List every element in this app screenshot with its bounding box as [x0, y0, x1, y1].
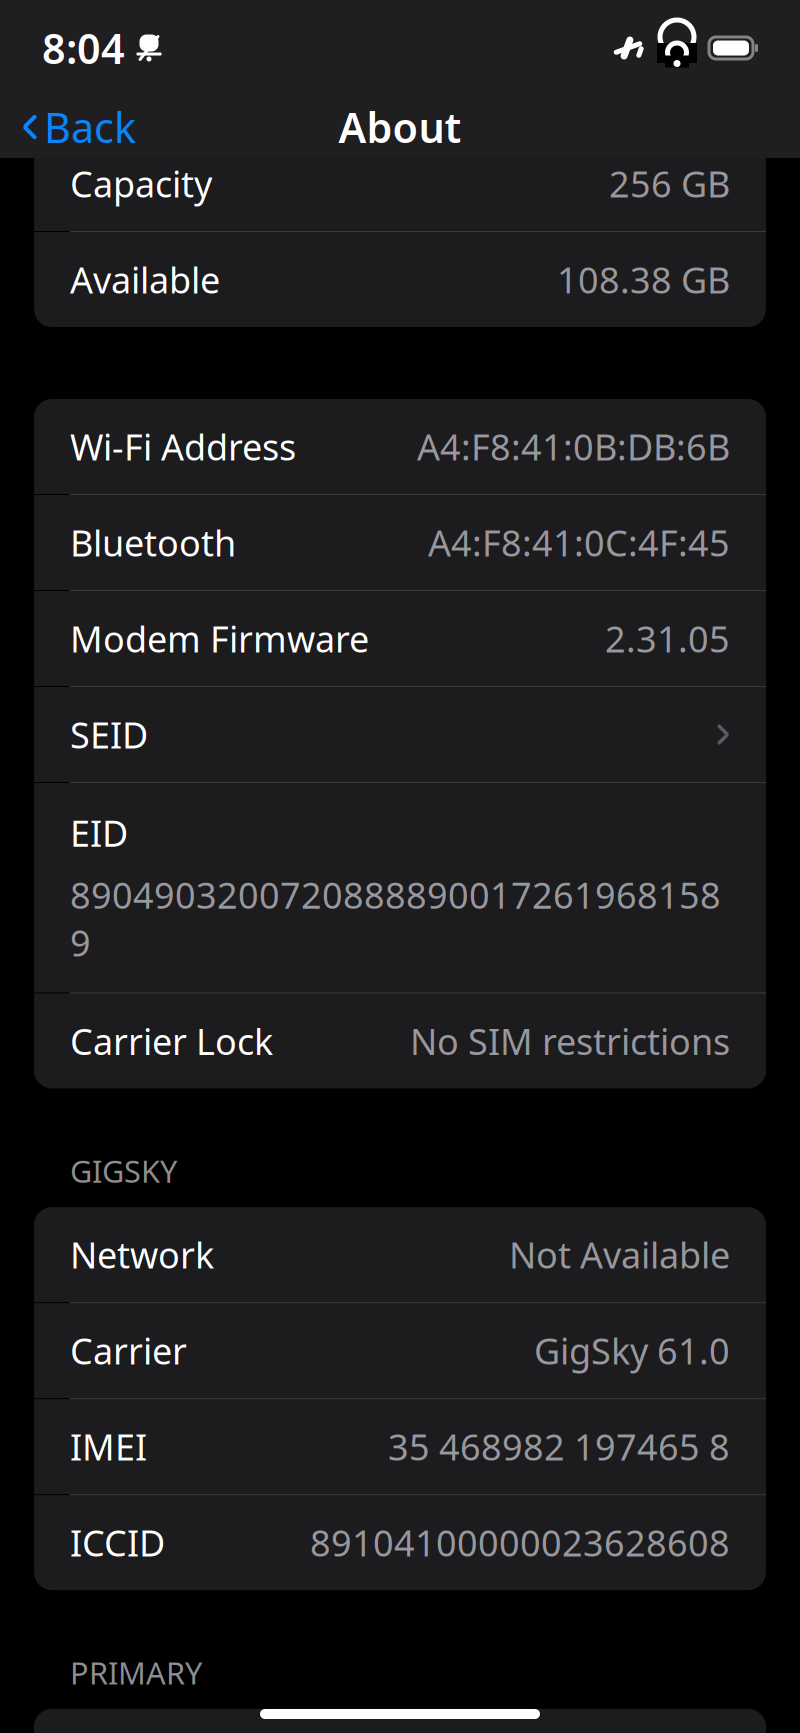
staticText: PRIMARY	[70, 1652, 202, 1693]
button[interactable]: SEID	[34, 687, 766, 782]
staticText: Back	[44, 100, 136, 154]
staticText: ICCID	[70, 1519, 165, 1566]
staticText: A4:F8:41:0C:4F:45	[428, 519, 730, 566]
staticText: 256 GB	[609, 160, 730, 207]
staticText: GigSky 61.0	[534, 1327, 730, 1374]
staticText: GIGSKY	[70, 1150, 177, 1191]
staticText: 8:04	[42, 21, 125, 75]
staticText: Network	[70, 1231, 214, 1278]
staticText: Modem Firmware	[70, 615, 369, 662]
staticText: 108.38 GB	[557, 256, 730, 303]
staticText: Available	[70, 256, 220, 303]
staticText: About	[338, 100, 461, 154]
staticText: SEID	[70, 711, 148, 758]
staticText: 35 468982 197465 8	[388, 1423, 730, 1470]
staticText: No SIM restrictions	[410, 1017, 730, 1065]
staticText: IMEI	[70, 1423, 147, 1470]
staticText: Bluetooth	[70, 519, 236, 566]
button[interactable]: Back	[0, 90, 158, 164]
staticText: 89049032007208888900172619681589	[70, 871, 721, 966]
staticText: Wi-Fi Address	[70, 423, 296, 470]
staticText: Not Available	[509, 1231, 730, 1278]
staticText: Capacity	[70, 160, 212, 207]
staticText: EID	[70, 809, 128, 857]
staticText: 2.31.05	[605, 615, 730, 662]
staticText: Carrier	[70, 1327, 187, 1374]
staticText: Carrier Lock	[70, 1017, 273, 1065]
staticText: 89104100000023628608	[310, 1519, 730, 1566]
staticText: A4:F8:41:0B:DB:6B	[417, 423, 730, 470]
